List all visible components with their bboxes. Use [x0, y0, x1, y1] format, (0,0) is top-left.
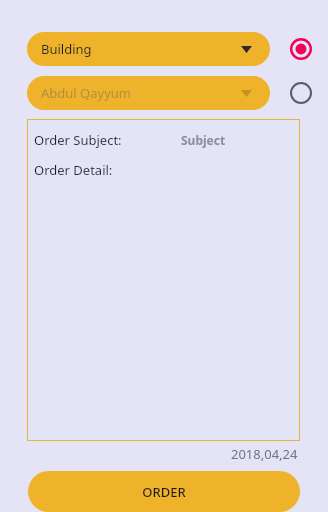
staticText: Order Detail: [34, 161, 113, 179]
staticText: 2018,04,24 [231, 445, 298, 463]
staticText: Building [41, 40, 92, 58]
staticText: Abdul Qayyum [41, 84, 131, 102]
button[interactable]: ORDER [28, 471, 300, 512]
staticText: Subject [181, 132, 226, 148]
button[interactable]: Select building order type [284, 32, 318, 66]
staticText: ORDER [142, 483, 186, 501]
button[interactable]: Order Subject: [27, 119, 300, 441]
button[interactable]: Abdul Qayyum [27, 76, 270, 110]
button[interactable]: Building [27, 32, 270, 66]
button[interactable]: Select person order type [284, 76, 318, 110]
staticText: Order Subject: [34, 131, 122, 149]
